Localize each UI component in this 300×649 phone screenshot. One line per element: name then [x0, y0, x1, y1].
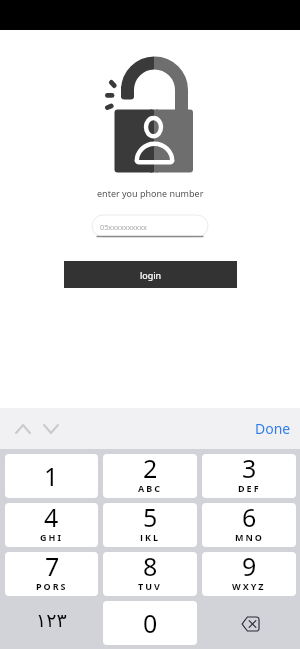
button[interactable]: 0 [103, 601, 197, 645]
button[interactable]: 8 [103, 552, 197, 596]
staticText: 5 [143, 503, 158, 534]
button[interactable]: 9 [202, 552, 296, 596]
staticText: 05xxxxxxxxxx [100, 222, 147, 232]
button[interactable]: 05xxxxxxxxxx [92, 215, 208, 237]
staticText: enter you phone number [97, 187, 204, 199]
button[interactable]: login [64, 261, 237, 288]
staticText: WXYZ [232, 580, 266, 590]
staticText: 0 [143, 606, 158, 640]
staticText: PQRS [36, 580, 68, 590]
button[interactable]: ١٢٣ [5, 601, 98, 645]
button[interactable]: 5 [103, 503, 197, 547]
button[interactable]: Backspace [202, 601, 296, 645]
button[interactable]: 3 [202, 454, 296, 498]
button[interactable]: 2 [103, 454, 197, 498]
button[interactable]: 4 [5, 503, 98, 547]
staticText: ١٢٣ [36, 609, 67, 631]
staticText: 2 [143, 454, 158, 485]
staticText: 6 [242, 503, 257, 534]
staticText: JKL [140, 531, 160, 541]
staticText: MNO [235, 531, 264, 541]
button[interactable]: 1 [5, 454, 98, 498]
button[interactable]: 7 [5, 552, 98, 596]
staticText: 1 [44, 459, 59, 493]
staticText: DEF [238, 482, 261, 492]
staticText: TUV [138, 580, 162, 590]
staticText: 8 [143, 552, 158, 583]
staticText: 9 [242, 552, 257, 583]
button[interactable]: 6 [202, 503, 296, 547]
button[interactable]: Done [251, 415, 295, 442]
button[interactable]: Next field [39, 417, 63, 441]
staticText: 4 [44, 503, 59, 534]
staticText: GHI [40, 531, 63, 541]
button[interactable]: Previous field [11, 417, 35, 441]
staticText: Done [255, 419, 291, 438]
staticText: 3 [242, 454, 257, 485]
staticText: ABC [138, 482, 162, 492]
staticText: 7 [45, 552, 60, 583]
staticText: login [140, 269, 162, 281]
